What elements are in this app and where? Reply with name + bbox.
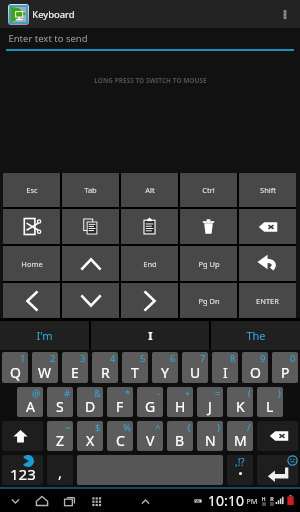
- button[interactable]: #: [47, 387, 73, 417]
- button[interactable]: (: [227, 387, 253, 417]
- staticText: 6: [170, 352, 176, 365]
- staticText: 0: [290, 352, 296, 365]
- staticText: Keyboard: [32, 8, 75, 21]
- button[interactable]: 6: [152, 352, 178, 383]
- staticText: -: [157, 387, 161, 400]
- button[interactable]: More options: [274, 0, 296, 28]
- button[interactable]: 3: [62, 352, 88, 383]
- staticText: The: [246, 328, 266, 343]
- staticText: S: [56, 397, 64, 416]
- staticText: Q: [10, 363, 21, 382]
- button[interactable]: ): [257, 387, 283, 417]
- button[interactable]: Backspace: [257, 421, 298, 451]
- button[interactable]: Copy: [62, 209, 119, 244]
- staticText: 2: [50, 352, 56, 365]
- button[interactable]: Paste: [121, 209, 178, 244]
- staticText: J: [208, 397, 212, 416]
- button[interactable]: Comma: [47, 455, 73, 485]
- button[interactable]: Tab: [62, 173, 119, 207]
- button[interactable]: Back: [4, 490, 26, 512]
- staticText: C: [116, 431, 125, 450]
- button[interactable]: Apps: [85, 490, 107, 512]
- staticText: Enter text to send: [8, 32, 88, 45]
- staticText: Home: [21, 259, 43, 269]
- button[interactable]: Page up: [62, 246, 119, 281]
- button[interactable]: 4: [92, 352, 118, 383]
- staticText: 3: [80, 352, 86, 365]
- button[interactable]: @: [17, 387, 43, 417]
- button[interactable]: I: [91, 321, 209, 350]
- staticText: Pg Up: [198, 259, 220, 269]
- staticText: /: [247, 421, 251, 434]
- button[interactable]: Home: [3, 246, 60, 281]
- button[interactable]: Shift: [2, 421, 43, 451]
- button[interactable]: *: [107, 387, 133, 417]
- button[interactable]: 2: [32, 352, 58, 383]
- button[interactable]: -: [137, 387, 163, 417]
- button[interactable]: End: [121, 246, 178, 281]
- staticText: Pg Dn: [198, 296, 220, 306]
- staticText: H: [261, 495, 266, 502]
- staticText: I'm: [36, 328, 53, 343]
- button[interactable]: Recents: [58, 490, 80, 512]
- staticText: End: [143, 259, 157, 269]
- button[interactable]: =: [197, 387, 223, 417]
- staticText: G: [145, 397, 156, 416]
- button[interactable]: %: [107, 421, 133, 451]
- staticText: =: [215, 387, 221, 400]
- staticText: B: [175, 431, 185, 450]
- staticText: ,: [58, 462, 63, 482]
- staticText: +: [185, 387, 191, 400]
- button[interactable]: ENTER: [239, 283, 296, 318]
- button[interactable]: The: [211, 321, 300, 350]
- button[interactable]: }: [197, 421, 223, 451]
- button[interactable]: 8: [212, 352, 238, 383]
- button[interactable]: Shift: [239, 173, 296, 207]
- staticText: 4: [110, 352, 116, 365]
- button[interactable]: Delete: [180, 209, 237, 244]
- staticText: Y: [161, 363, 169, 382]
- button[interactable]: Pg Dn: [180, 283, 237, 318]
- button[interactable]: Cut: [3, 209, 60, 244]
- button[interactable]: Esc: [3, 173, 60, 207]
- button[interactable]: Right: [121, 283, 178, 318]
- staticText: %: [123, 421, 131, 434]
- button[interactable]: 0: [272, 352, 298, 383]
- button[interactable]: {: [167, 421, 193, 451]
- button[interactable]: Left: [3, 283, 60, 318]
- button[interactable]: 7: [182, 352, 208, 383]
- button[interactable]: 9: [242, 352, 268, 383]
- button[interactable]: ^: [137, 421, 163, 451]
- button[interactable]: &: [77, 387, 103, 417]
- button[interactable]: Home: [31, 490, 53, 512]
- staticText: ^: [155, 421, 161, 434]
- button[interactable]: Return: [239, 246, 296, 281]
- staticText: K: [236, 397, 245, 416]
- staticText: Shift: [260, 185, 276, 195]
- button[interactable]: +: [167, 387, 193, 417]
- button[interactable]: Enter: [257, 455, 298, 485]
- button[interactable]: Numbers and symbols: [2, 455, 43, 485]
- button[interactable]: ~: [47, 421, 73, 451]
- staticText: (: [248, 387, 251, 400]
- button[interactable]: I'm: [0, 321, 89, 350]
- staticText: H: [175, 397, 186, 416]
- button[interactable]: Down: [62, 283, 119, 318]
- button[interactable]: Punctuation: [227, 455, 253, 485]
- staticText: PM: [246, 496, 258, 506]
- button[interactable]: Ctrl: [180, 173, 237, 207]
- button[interactable]: Alt: [121, 173, 178, 207]
- staticText: 123: [10, 464, 36, 484]
- button[interactable]: 1: [2, 352, 28, 383]
- staticText: $: [95, 421, 101, 434]
- staticText: {: [187, 421, 191, 434]
- staticText: 1: [20, 352, 26, 365]
- staticText: M: [234, 431, 247, 450]
- button[interactable]: Pg Up: [180, 246, 237, 281]
- button[interactable]: 5: [122, 352, 148, 383]
- button[interactable]: Hide keyboard: [134, 490, 156, 512]
- button[interactable]: Backspace: [239, 209, 296, 244]
- button[interactable]: $: [77, 421, 103, 451]
- button[interactable]: /: [227, 421, 253, 451]
